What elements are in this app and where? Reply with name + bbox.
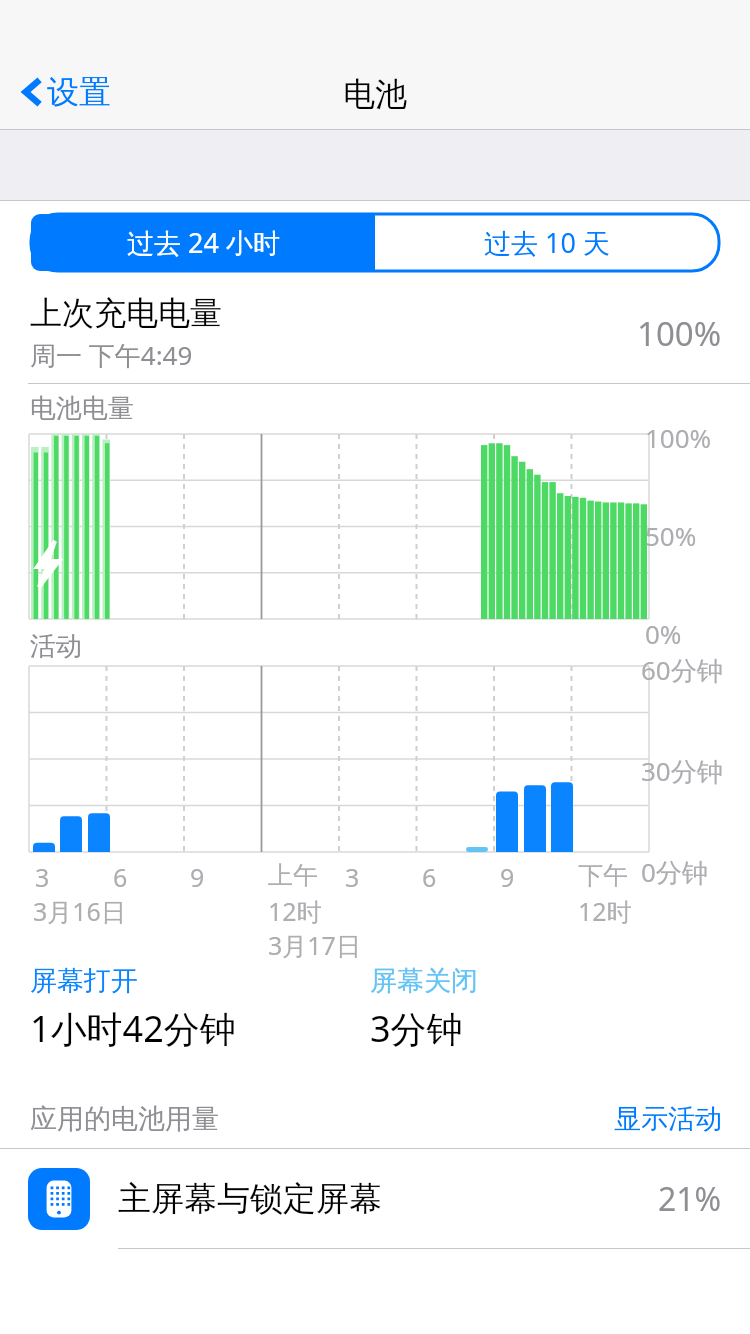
staticText: 9 [190,860,205,894]
staticText: 过去 24 小时 [127,224,280,261]
staticText: 设置 [47,72,111,112]
staticText: 3 [35,860,50,894]
staticText: 上午 [268,860,318,891]
staticText: 上次充电电量 [30,293,222,333]
staticText: 电池电量 [30,392,134,425]
staticText: 100% [645,420,712,455]
button[interactable]: 显示活动 [586,1098,750,1140]
staticText: 电池 [343,74,407,114]
staticText: 6 [113,860,128,894]
button[interactable]: 主屏幕与锁定屏幕 [0,1149,750,1249]
staticText: 屏幕打开 [30,964,138,998]
staticText: 1小时42分钟 [30,1004,236,1053]
staticText: 3月17日 [268,928,361,962]
staticText: 3分钟 [370,1004,463,1053]
button[interactable]: 过去 10 天 [375,214,719,271]
staticText: 12时 [268,894,322,928]
staticText: 9 [500,860,515,894]
staticText: 30分钟 [641,753,723,789]
staticText: 周一 下午4:49 [30,337,193,373]
button[interactable]: 过去 24 小时 [31,214,375,271]
staticText: 屏幕关闭 [370,964,478,998]
staticText: 21% [658,1177,722,1221]
staticText: 50% [645,518,697,553]
staticText: 12时 [578,894,632,928]
staticText: 100% [637,311,722,356]
staticText: 应用的电池用量 [30,1102,219,1136]
staticText: 0% [645,616,682,651]
staticText: 3 [345,860,360,894]
staticText: 60分钟 [641,652,723,688]
staticText: 主屏幕与锁定屏幕 [118,1178,382,1220]
staticText: 下午 [578,860,628,891]
staticText: 6 [422,860,437,894]
button[interactable]: 设置 [16,68,117,116]
staticText: 3月16日 [33,894,126,928]
staticText: 活动 [30,630,82,663]
staticText: 过去 10 天 [484,224,610,261]
staticText: 0分钟 [641,854,708,890]
staticText: 显示活动 [614,1102,722,1136]
